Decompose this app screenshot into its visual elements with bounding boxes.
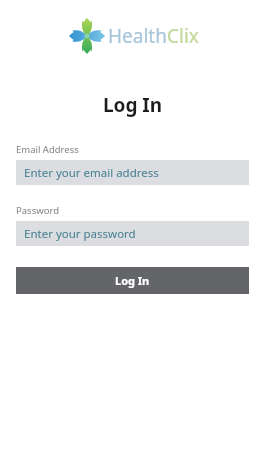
staticText: Log In xyxy=(115,273,150,288)
staticText: Enter your password xyxy=(24,226,136,242)
staticText: Clix xyxy=(167,23,199,49)
other: HealthClix logo xyxy=(67,16,107,56)
button[interactable]: Enter your password xyxy=(16,221,249,246)
button[interactable]: Enter your email address xyxy=(16,160,249,185)
staticText: Password xyxy=(16,204,59,217)
button[interactable]: Log In xyxy=(16,267,249,294)
staticText: Enter your email address xyxy=(24,165,159,181)
staticText: Log In xyxy=(0,92,265,118)
staticText: Health xyxy=(108,23,167,49)
staticText: Email Address xyxy=(16,143,79,156)
